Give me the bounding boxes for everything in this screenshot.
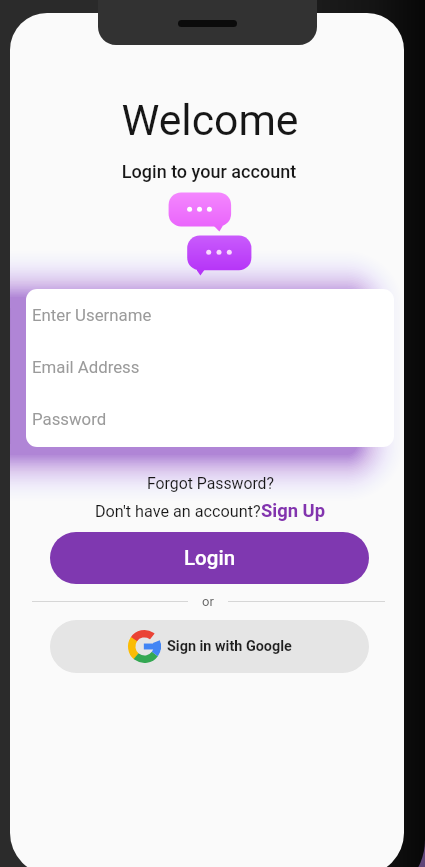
staticText: Don't have an account? <box>95 502 261 521</box>
staticText: Welcome <box>13 95 404 145</box>
button[interactable]: Login <box>50 532 369 584</box>
staticText: or <box>202 594 214 609</box>
button[interactable]: Email Address <box>26 341 394 393</box>
staticText: Sign in with Google <box>167 638 292 655</box>
button[interactable]: Forgot Password? <box>139 471 282 496</box>
button[interactable]: Password <box>26 393 394 445</box>
staticText: Login <box>184 546 236 570</box>
staticText: Enter Username <box>32 305 152 325</box>
button[interactable]: Enter Username <box>26 289 394 341</box>
button[interactable]: Sign in with Google <box>50 620 369 673</box>
staticText: Password <box>32 409 107 429</box>
staticText: Email Address <box>32 357 140 377</box>
staticText: Sign Up <box>261 500 326 522</box>
staticText: Forgot Password? <box>147 474 274 493</box>
button[interactable]: Sign Up <box>261 500 326 522</box>
staticText: Login to your account <box>12 161 404 182</box>
